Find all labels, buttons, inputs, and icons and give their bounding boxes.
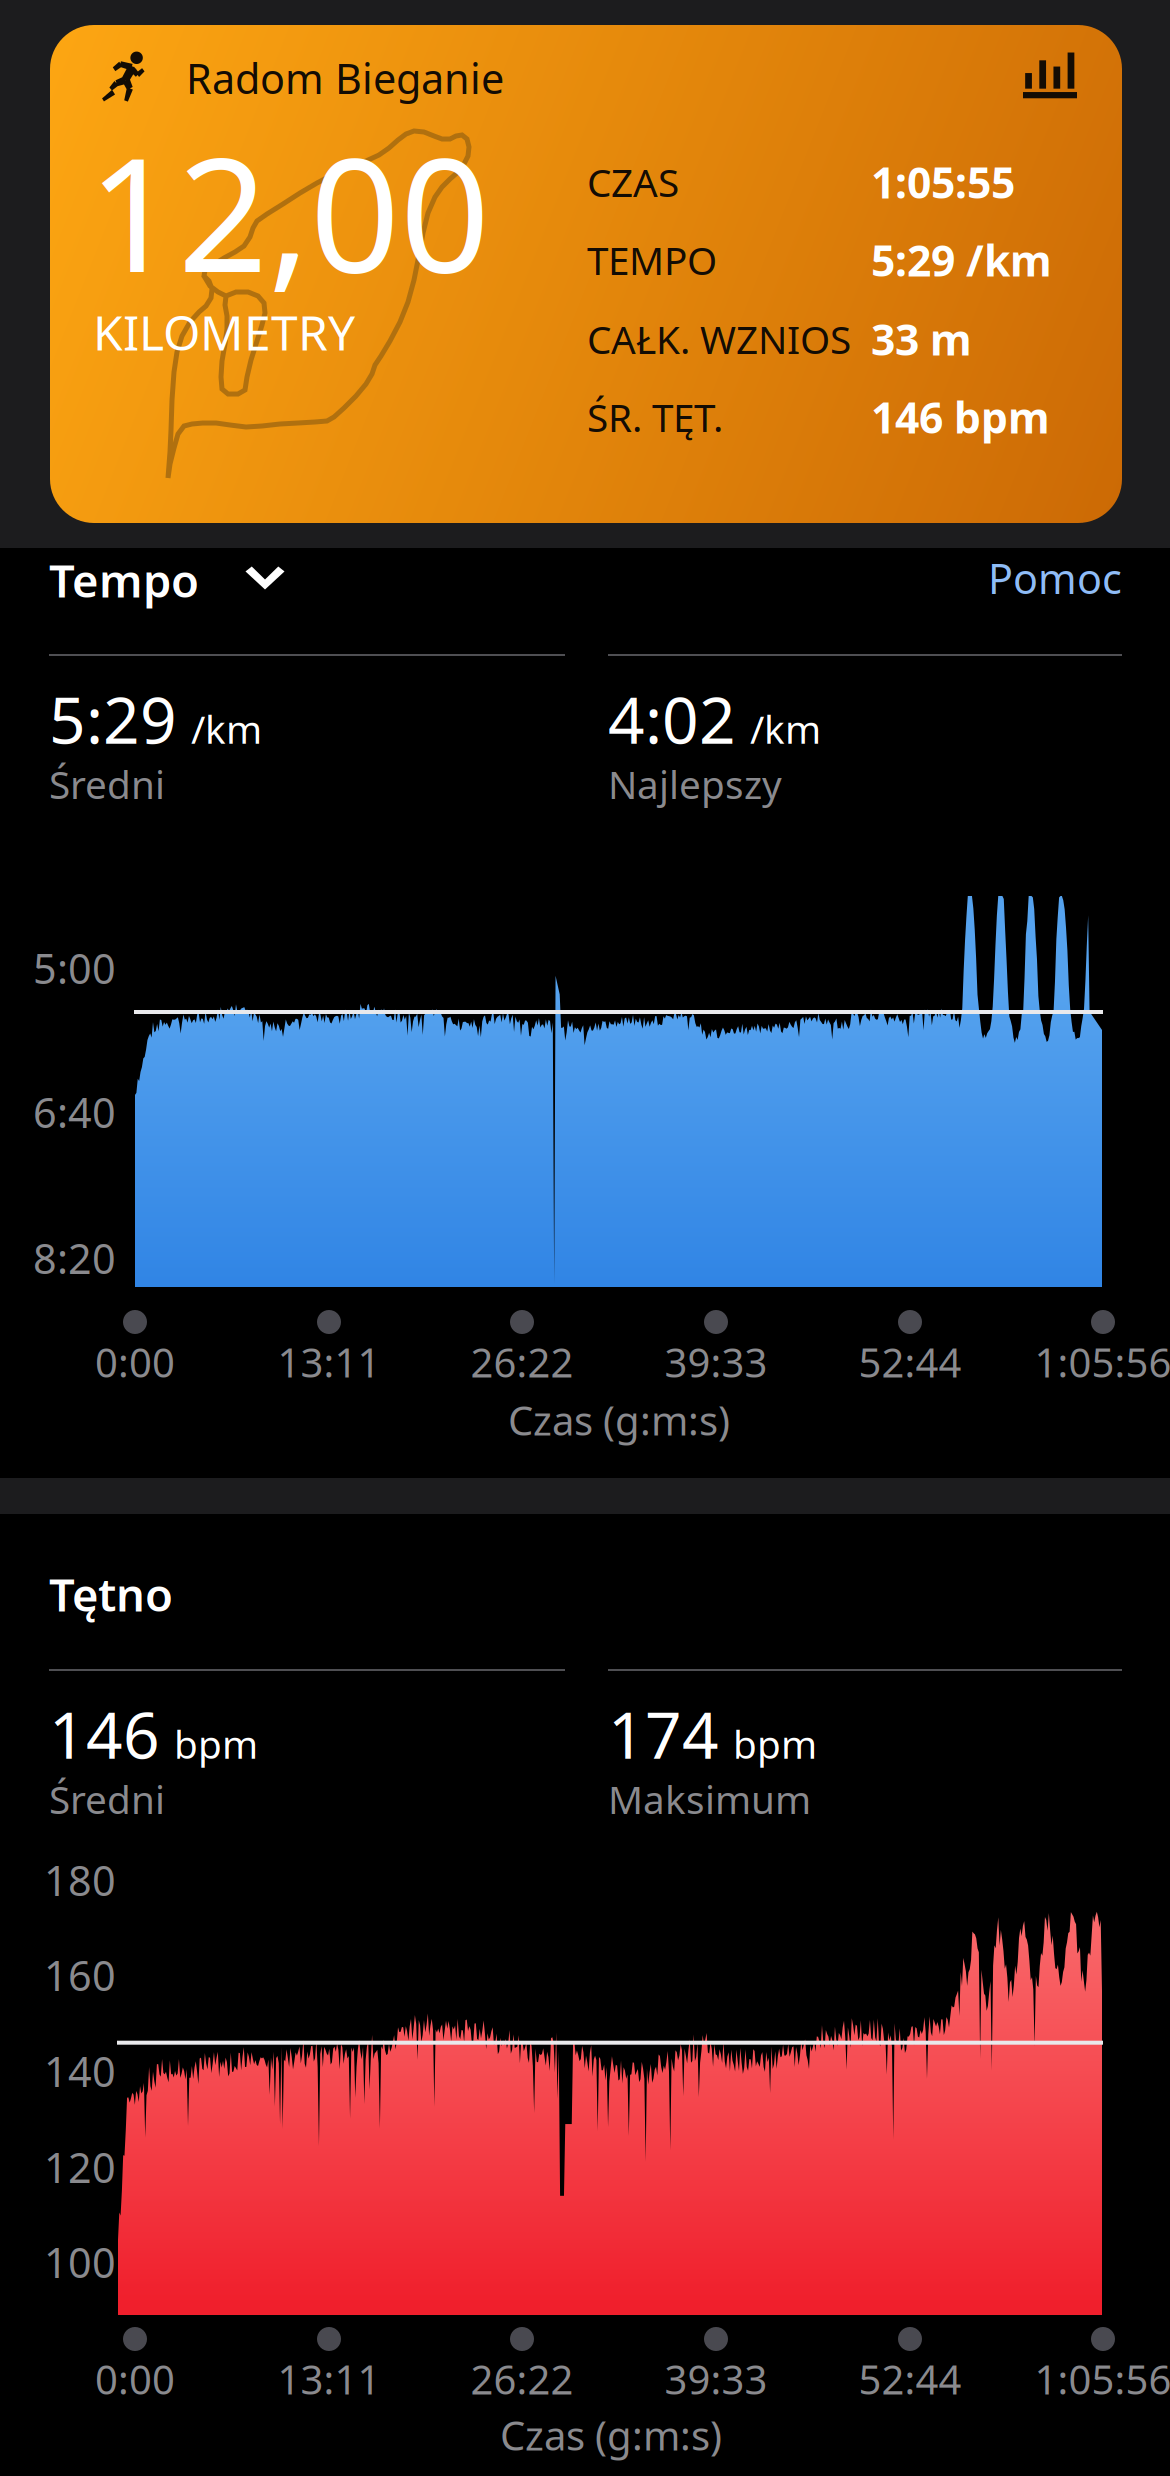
staticText: Najlepszy [608,758,782,810]
staticText: Maksimum [608,1773,811,1825]
staticText: 13:11 [277,2352,380,2405]
staticText: Tempo [49,550,199,610]
staticText: CAŁK. WZNIOS [587,313,851,365]
staticText: 180 [44,1853,116,1907]
staticText: 0:00 [95,1335,175,1388]
staticText: /km [750,703,821,754]
staticText: 8:20 [33,1231,116,1285]
staticText: Pomoc [988,551,1122,605]
staticText: 174 [608,1691,719,1776]
button[interactable]: Radom Bieganie [50,25,1122,523]
staticText: KILOMETRY [93,300,355,364]
staticText: 5:00 [33,941,116,995]
staticText: 140 [44,2044,116,2098]
staticText: 146 [49,1691,160,1776]
staticText: 52:44 [858,1335,961,1388]
staticText: 120 [44,2140,116,2194]
button[interactable]: Tempo [0,0,1170,2476]
staticText: bpm [733,1718,817,1769]
staticText: Czas (g:m:s) [500,2408,722,2461]
staticText: 5:29 [49,676,177,761]
staticText: 1:05:56 [1034,2352,1170,2405]
staticText: Tętno [49,1564,173,1624]
staticText: 4:02 [608,676,736,761]
staticText: Radom Bieganie [186,51,504,105]
staticText: 26:22 [470,1335,573,1388]
staticText: 12,00 [88,106,490,315]
staticText: 5:29 /km [871,232,1052,288]
button[interactable]: Pomoc [0,0,1170,2476]
staticText: 100 [44,2235,116,2289]
staticText: 52:44 [858,2352,961,2405]
staticText: 146 bpm [871,389,1050,445]
staticText: 6:40 [33,1085,116,1139]
staticText: /km [191,703,262,754]
staticText: 39:33 [664,1335,767,1388]
staticText: ŚR. TĘT. [587,391,723,443]
staticText: Średni [49,1773,165,1825]
staticText: CZAS [587,156,679,208]
staticText: 39:33 [664,2352,767,2405]
staticText: 1:05:56 [1034,1335,1170,1388]
staticText: 26:22 [470,2352,573,2405]
staticText: bpm [174,1718,258,1769]
staticText: 0:00 [95,2352,175,2405]
staticText: 1:05:55 [871,154,1015,210]
staticText: 160 [44,1948,116,2002]
staticText: TEMPO [587,234,717,286]
staticText: Średni [49,758,165,810]
staticText: 13:11 [277,1335,380,1388]
staticText: Czas (g:m:s) [508,1393,730,1446]
staticText: 33 m [871,311,972,367]
